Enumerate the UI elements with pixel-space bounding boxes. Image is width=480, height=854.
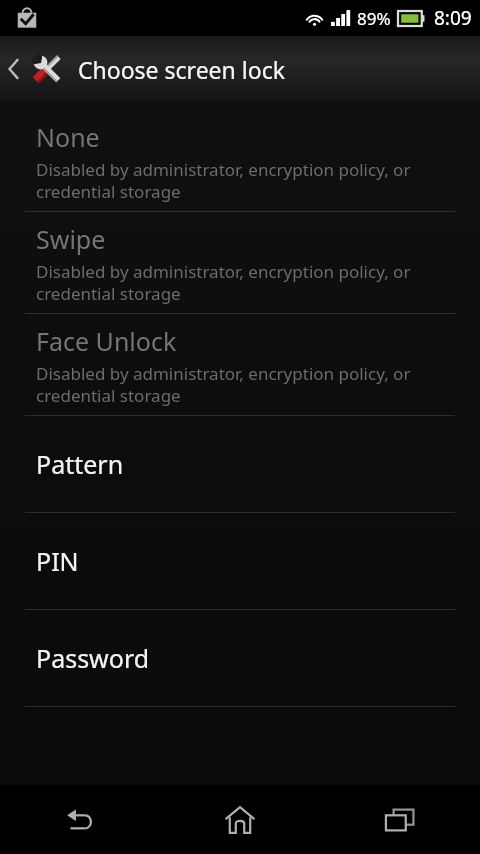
staticText: 89% <box>357 7 391 30</box>
button[interactable]: Password <box>0 610 480 706</box>
staticText: Face Unlock <box>36 324 177 358</box>
button[interactable]: Home <box>160 785 320 854</box>
staticText: 8:09 <box>434 5 472 31</box>
button[interactable]: Navigate up <box>0 36 480 102</box>
button[interactable]: Swipe <box>0 212 480 313</box>
button[interactable]: Face Unlock <box>0 314 480 415</box>
staticText: PIN <box>36 544 79 578</box>
staticText: Disabled by administrator, encryption po… <box>36 158 456 203</box>
staticText: Pattern <box>36 447 124 481</box>
button[interactable]: Recent apps <box>320 785 480 854</box>
staticText: Choose screen lock <box>78 54 285 85</box>
button[interactable]: None <box>0 110 480 211</box>
staticText: Password <box>36 641 150 675</box>
button[interactable]: Back <box>0 785 160 854</box>
staticText: None <box>36 120 100 154</box>
staticText: Disabled by administrator, encryption po… <box>36 260 456 305</box>
button[interactable]: Pattern <box>0 416 480 512</box>
staticText: Swipe <box>36 222 106 256</box>
button[interactable]: PIN <box>0 513 480 609</box>
staticText: Disabled by administrator, encryption po… <box>36 362 456 407</box>
